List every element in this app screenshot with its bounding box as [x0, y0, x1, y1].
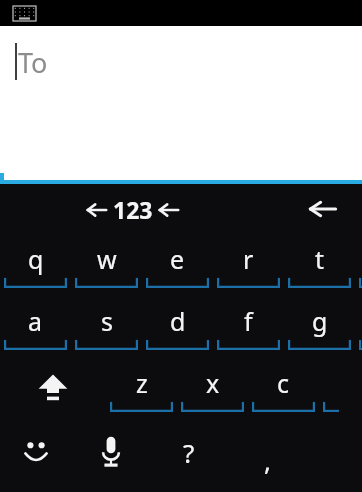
button[interactable]: c: [248, 358, 319, 420]
button[interactable]: ?: [150, 420, 228, 492]
staticText: c: [277, 366, 290, 400]
button[interactable]: x: [177, 358, 248, 420]
staticText: 123: [113, 194, 153, 225]
staticText: d: [170, 304, 186, 338]
button[interactable]: d: [142, 296, 213, 358]
button[interactable]: t: [284, 234, 355, 296]
staticText: f: [244, 304, 253, 338]
button[interactable]: a: [0, 296, 71, 358]
staticText: To: [18, 44, 48, 81]
button[interactable]: 123: [86, 194, 180, 225]
other: Keyboard input active: [13, 6, 36, 21]
button[interactable]: ,: [228, 420, 306, 492]
button[interactable]: Voice input: [72, 420, 150, 492]
button[interactable]: f: [213, 296, 284, 358]
staticText: e: [170, 242, 185, 276]
staticText: ?: [183, 435, 195, 470]
staticText: s: [101, 304, 113, 338]
staticText: z: [136, 366, 148, 400]
staticText: a: [28, 304, 43, 338]
staticText: x: [206, 366, 220, 400]
button[interactable]: s: [71, 296, 142, 358]
button[interactable]: z: [106, 358, 177, 420]
staticText: q: [28, 242, 44, 276]
button[interactable]: Shift: [0, 358, 106, 420]
staticText: ,: [264, 443, 271, 478]
button[interactable]: r: [213, 234, 284, 296]
staticText: w: [97, 242, 117, 276]
button[interactable]: e: [142, 234, 213, 296]
button[interactable]: Backspace: [306, 192, 340, 226]
button[interactable]: Emoji: [0, 420, 72, 492]
button[interactable]: g: [284, 296, 355, 358]
staticText: t: [315, 242, 325, 276]
staticText: r: [243, 242, 254, 276]
button[interactable]: To: [0, 26, 362, 184]
staticText: g: [312, 304, 328, 338]
button[interactable]: w: [71, 234, 142, 296]
button[interactable]: q: [0, 234, 71, 296]
